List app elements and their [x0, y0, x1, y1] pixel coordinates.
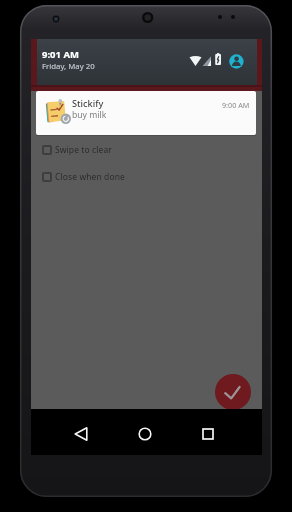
button[interactable]: Close when done — [39, 170, 179, 184]
button[interactable] — [215, 374, 251, 410]
staticText: buy milk — [72, 109, 107, 121]
staticText: Close when done — [55, 171, 125, 183]
button[interactable] — [71, 424, 91, 444]
staticText: Swipe to clear — [55, 144, 112, 156]
staticText: Stickify — [72, 97, 104, 110]
staticText: Friday, May 20 — [42, 61, 95, 72]
button[interactable] — [198, 424, 218, 444]
button[interactable]: Swipe to clear — [39, 143, 179, 157]
button[interactable] — [135, 424, 155, 444]
button[interactable]: Stickify — [36, 91, 256, 135]
staticText: 9:01 AM — [42, 48, 79, 61]
staticText: 9:00 AM — [222, 100, 250, 110]
